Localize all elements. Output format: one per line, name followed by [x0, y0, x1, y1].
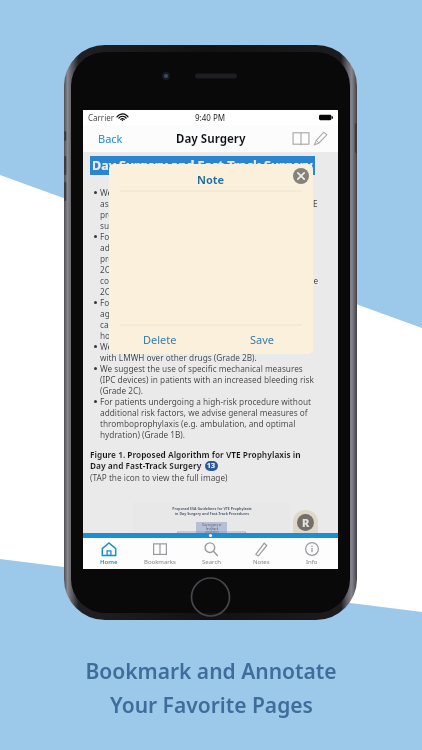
- staticText: For patients undergoing a high-risk proc…: [100, 396, 320, 440]
- staticText: We suggest that pharmacological prophyla…: [100, 341, 320, 363]
- button[interactable]: Close: [293, 168, 309, 184]
- staticText: For patients undergoing fast-track surge…: [100, 297, 320, 341]
- button[interactable]: Edit note: [313, 131, 328, 146]
- staticText: Notes: [253, 558, 270, 566]
- staticText: Day and Fast-Track Surgery: [90, 460, 202, 471]
- button[interactable]: Back: [98, 131, 123, 146]
- staticText: Home: [100, 558, 118, 566]
- staticText: 13: [207, 461, 216, 471]
- staticText: Note: [197, 172, 225, 187]
- button[interactable]: Bookmarks: [135, 538, 185, 569]
- button[interactable]: Info: [287, 538, 337, 569]
- staticText: Figure 1. Proposed Algorithm for VTE Pro…: [90, 449, 301, 460]
- staticText: Day surgery or fast-track procedure: [202, 523, 222, 533]
- staticText: in Day Surgery and Fast-Track Procedures: [175, 511, 249, 516]
- staticText: 9:40 PM: [195, 112, 226, 123]
- staticText: Delete: [143, 332, 177, 347]
- staticText: For patients undergoing day surgery and …: [100, 231, 320, 297]
- staticText: Proposed ESA Guidelines for VTE Prophyla…: [172, 506, 252, 511]
- button[interactable]: References: [293, 510, 318, 538]
- staticText: Bookmarks: [144, 558, 176, 566]
- staticText: Info: [306, 558, 318, 566]
- staticText: Day Surgery and Fast-Track Surgery: [92, 157, 313, 174]
- staticText: Bookmark and Annotate: [85, 657, 337, 686]
- staticText: Back: [98, 131, 123, 146]
- staticText: Your Favorite Pages: [110, 691, 313, 720]
- staticText: Day Surgery: [176, 131, 246, 147]
- staticText: R: [302, 515, 310, 530]
- staticText: Save: [250, 332, 275, 347]
- button[interactable]: Save: [211, 325, 313, 354]
- staticText: Carrier: [88, 112, 115, 123]
- button[interactable]: 13: [205, 461, 218, 471]
- button[interactable]: Delete: [109, 325, 211, 354]
- staticText: (TAP the icon to view the full image): [90, 472, 228, 483]
- staticText: We recommend that all patients be assess…: [100, 187, 320, 231]
- staticText: We suggest the use of specific mechanica…: [100, 363, 320, 396]
- button[interactable]: Search: [186, 538, 236, 569]
- staticText: Search: [202, 558, 221, 566]
- button[interactable]: Home: [84, 538, 134, 569]
- button[interactable]: Notes: [236, 538, 286, 569]
- button[interactable]: Figure 1 thumbnail: [133, 502, 290, 538]
- button[interactable]: Two page view: [292, 131, 310, 146]
